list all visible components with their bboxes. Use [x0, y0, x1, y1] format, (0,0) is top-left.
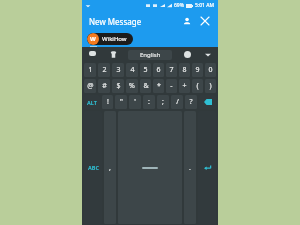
button[interactable]: # [98, 79, 110, 93]
button[interactable]: % [126, 79, 138, 93]
staticText: 8 [182, 65, 187, 75]
staticText: English [140, 51, 161, 59]
button[interactable]: ALT [84, 95, 100, 109]
button[interactable]: Hide keyboard [202, 49, 213, 60]
button[interactable]: 2 [98, 63, 110, 77]
button[interactable]: Clipboard [108, 49, 119, 60]
staticText: & [143, 81, 149, 91]
button[interactable]: 6 [153, 63, 164, 77]
staticText: . [189, 163, 191, 173]
staticText: " [120, 97, 123, 107]
staticText: ALT [87, 99, 97, 106]
button[interactable]: Enter [198, 111, 216, 224]
staticText: 0 [208, 65, 213, 75]
button[interactable]: W [87, 33, 133, 45]
button[interactable]: ? [185, 95, 197, 109]
staticText: ; [162, 97, 164, 107]
button[interactable]: English [128, 50, 172, 60]
staticText: W [90, 35, 96, 43]
staticText: 7 [169, 65, 174, 75]
button[interactable]: ) [205, 79, 216, 93]
button[interactable]: 3 [112, 63, 124, 77]
staticText: * [157, 81, 161, 91]
staticText: 4 [130, 65, 135, 75]
button[interactable]: ! [102, 95, 113, 109]
button[interactable]: ABC [84, 111, 102, 224]
staticText: 5 [143, 65, 148, 75]
staticText: $ [116, 81, 121, 91]
staticText: 3 [116, 65, 121, 75]
staticText: - [170, 81, 173, 91]
staticText: ) [209, 81, 212, 91]
button[interactable]: ( [192, 79, 203, 93]
staticText: 2 [102, 65, 107, 75]
staticText: / [176, 97, 179, 107]
staticText: + [182, 81, 187, 91]
staticText: 1 [88, 65, 93, 75]
staticText: 69% [174, 2, 184, 9]
button[interactable]: * [153, 79, 164, 93]
staticText: @ [87, 81, 94, 91]
staticText: 9 [195, 65, 200, 75]
button[interactable]: @ [84, 79, 96, 93]
staticText: 5:01 AM [195, 2, 215, 9]
staticText: ABC [88, 164, 99, 171]
button[interactable]: , [104, 111, 116, 224]
staticText: 6 [156, 65, 161, 75]
staticText: ? [189, 97, 193, 107]
button[interactable]: : [143, 95, 155, 109]
staticText: : [148, 97, 150, 107]
button[interactable]: 7 [166, 63, 177, 77]
button[interactable]: 8 [179, 63, 190, 77]
staticText: ! [107, 97, 109, 107]
button[interactable]: ; [157, 95, 169, 109]
staticText: % [129, 81, 135, 91]
button[interactable]: Voice input [87, 49, 98, 60]
button[interactable]: - [166, 79, 177, 93]
button[interactable]: ' [129, 95, 141, 109]
staticText: # [102, 81, 107, 91]
button[interactable]: 1 [84, 63, 96, 77]
button[interactable]: " [115, 95, 127, 109]
button[interactable]: 9 [192, 63, 203, 77]
button[interactable]: Space [118, 111, 182, 224]
button[interactable]: 5 [140, 63, 151, 77]
staticText: WikiHow [102, 35, 127, 43]
button[interactable]: + [179, 79, 190, 93]
button[interactable]: Add recipient [180, 14, 194, 28]
button[interactable]: Close [198, 14, 212, 28]
staticText: ' [134, 97, 136, 107]
button[interactable]: Emoji [182, 49, 193, 60]
button[interactable]: Backspace [199, 95, 216, 109]
staticText: ( [196, 81, 199, 91]
button[interactable]: & [140, 79, 151, 93]
staticText: New Message [89, 16, 142, 27]
button[interactable]: / [171, 95, 183, 109]
staticText: , [109, 163, 111, 173]
button[interactable]: 4 [126, 63, 138, 77]
button[interactable]: $ [112, 79, 124, 93]
button[interactable]: 0 [205, 63, 216, 77]
button[interactable]: . [184, 111, 196, 224]
